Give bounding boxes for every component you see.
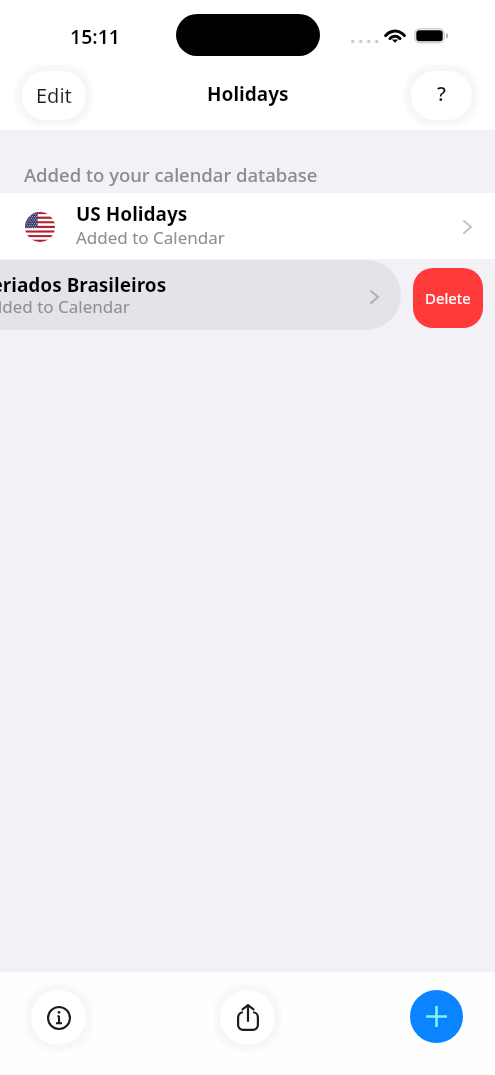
staticText: Added to Calendar: [76, 226, 225, 249]
staticText: Holidays: [207, 81, 289, 107]
button[interactable]: Help: [411, 71, 472, 120]
button[interactable]: US Holidays: [0, 193, 495, 259]
button[interactable]: Delete: [413, 268, 483, 328]
button[interactable]: Feriados Brasileiros: [0, 260, 401, 330]
staticText: US Holidays: [76, 201, 188, 227]
staticText: Edit: [36, 82, 72, 109]
staticText: Added to Calendar: [0, 295, 130, 318]
button[interactable]: Edit: [22, 71, 86, 120]
staticText: 15:11: [70, 23, 120, 50]
staticText: ?: [437, 80, 446, 107]
button[interactable]: Info: [31, 990, 86, 1045]
staticText: Feriados Brasileiros: [0, 272, 167, 298]
button[interactable]: Add: [410, 990, 463, 1043]
staticText: Delete: [425, 288, 471, 308]
button[interactable]: Share: [220, 990, 275, 1045]
staticText: Added to your calendar database: [24, 162, 318, 187]
